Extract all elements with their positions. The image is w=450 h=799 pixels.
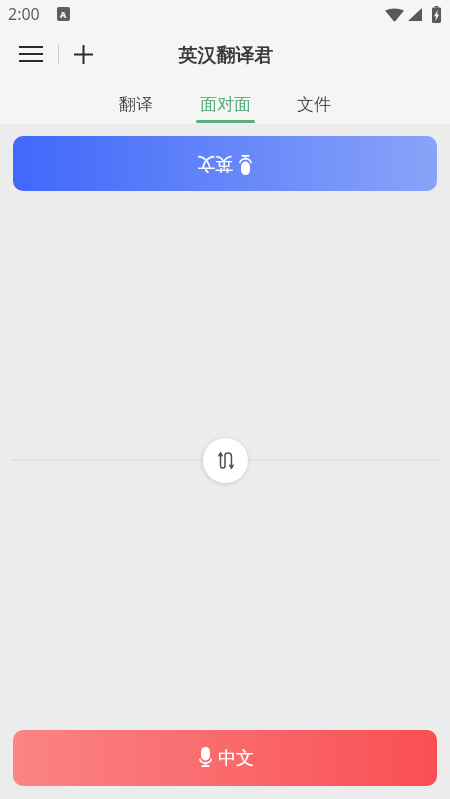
staticText: A <box>60 8 67 20</box>
button[interactable]: Add <box>64 28 102 80</box>
staticText: 面对面 <box>200 94 251 115</box>
staticText: 文件 <box>297 94 331 115</box>
button[interactable]: 文件 <box>269 80 359 124</box>
button[interactable]: 中文 <box>13 730 437 786</box>
button[interactable]: Menu <box>8 28 53 80</box>
button[interactable]: 英文 <box>13 136 437 191</box>
button[interactable]: Swap languages <box>203 438 248 483</box>
staticText: 2:00 <box>8 3 40 25</box>
button[interactable]: 翻译 <box>91 80 181 124</box>
staticText: 翻译 <box>119 94 153 115</box>
staticText: 英文 <box>197 152 233 175</box>
button[interactable]: 面对面 <box>181 80 269 124</box>
staticText: 英汉翻译君 <box>178 44 273 68</box>
staticText: 中文 <box>218 747 254 770</box>
